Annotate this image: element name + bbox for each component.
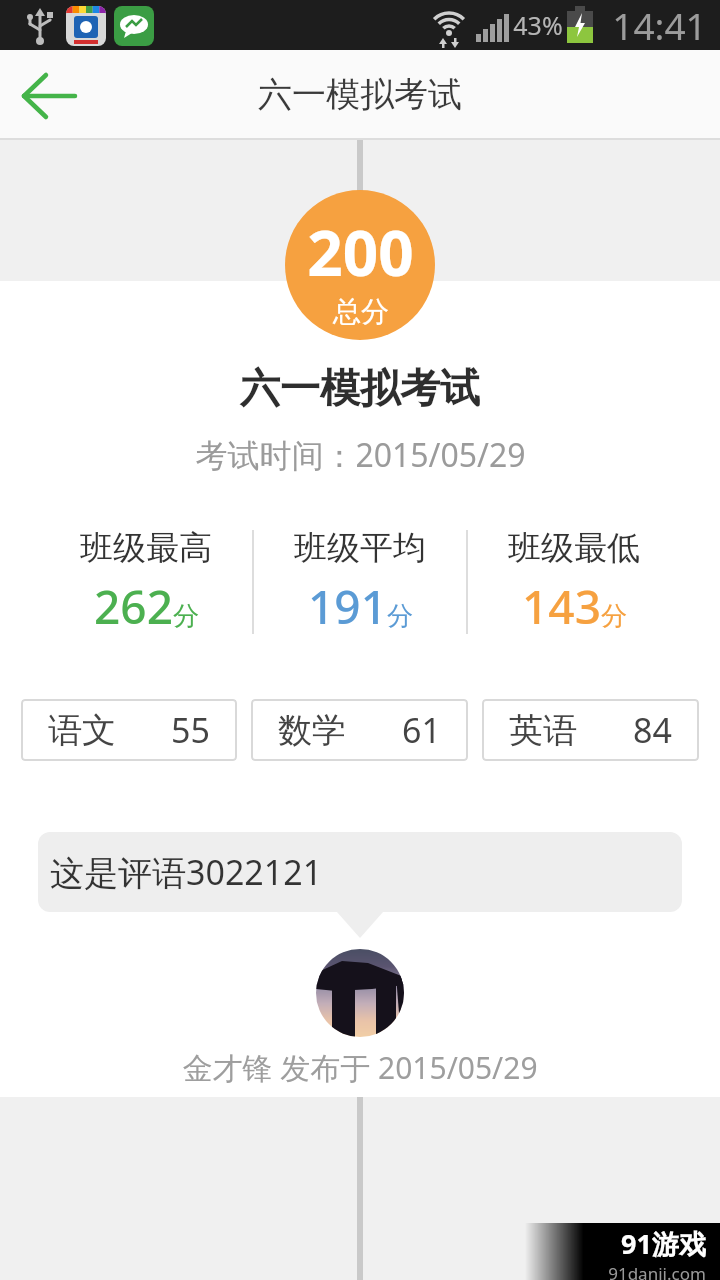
staticText: 分 <box>387 600 413 633</box>
staticText: 班级平均 <box>294 527 426 569</box>
staticText: 班级最高 <box>80 527 212 569</box>
staticText: 六一模拟考试 <box>240 363 480 413</box>
button[interactable]: 数学 <box>251 699 468 761</box>
staticText: 61 <box>402 707 441 753</box>
staticText: 金才锋 发布于 2015/05/29 <box>182 1047 538 1088</box>
button[interactable]: 这是评语3022121 <box>38 832 682 912</box>
staticText: 考试时间：2015/05/29 <box>195 433 526 477</box>
staticText: 143 <box>522 575 601 637</box>
staticText: 91游戏 <box>621 1225 706 1262</box>
staticText: 84 <box>633 707 672 753</box>
staticText: 英语 <box>509 709 577 752</box>
staticText: 总分 <box>333 294 389 329</box>
staticText: 语文 <box>48 709 116 752</box>
button[interactable] <box>6 66 94 126</box>
button[interactable]: 语文 <box>21 699 237 761</box>
staticText: 班级最低 <box>508 527 640 569</box>
staticText: 六一模拟考试 <box>258 73 462 116</box>
staticText: 55 <box>171 707 210 753</box>
staticText: 这是评语3022121 <box>50 849 323 895</box>
button[interactable]: 英语 <box>482 699 699 761</box>
staticText: 91danji.com <box>608 1262 706 1280</box>
staticText: 分 <box>173 600 199 633</box>
staticText: 200 <box>307 210 414 294</box>
staticText: 14:41 <box>612 0 707 50</box>
staticText: 分 <box>601 600 627 633</box>
staticText: 43% <box>513 8 563 42</box>
staticText: 191 <box>308 575 387 637</box>
staticText: 数学 <box>278 709 346 752</box>
staticText: 262 <box>94 575 173 637</box>
